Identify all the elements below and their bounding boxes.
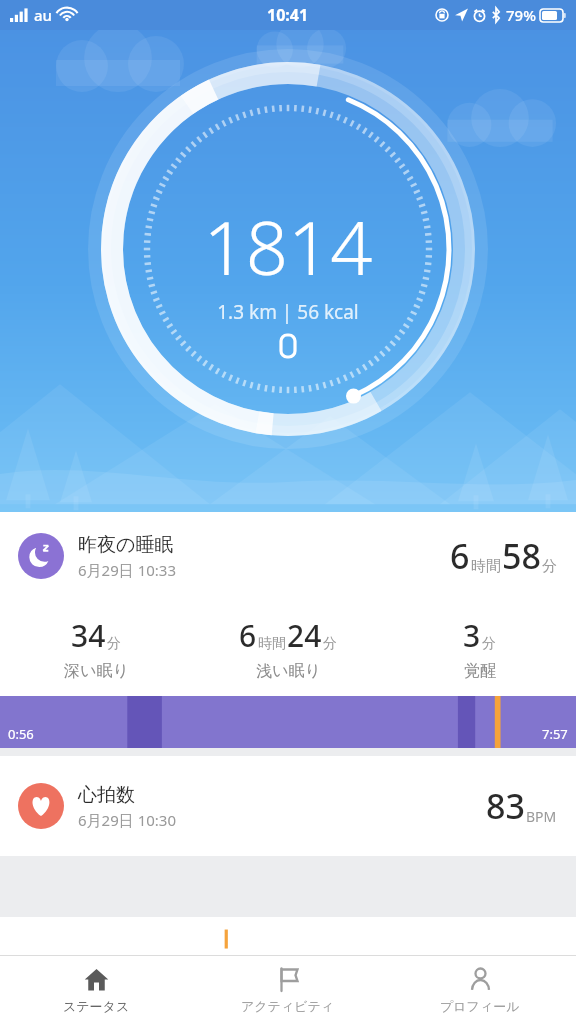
staticText: 分 (482, 635, 496, 653)
button[interactable]: 3 (384, 615, 576, 681)
staticText: アクティビティ (241, 998, 335, 1014)
staticText: BPM (526, 807, 557, 826)
staticText: 6月29日 10:33 (78, 560, 176, 580)
staticText: ステータス (63, 998, 130, 1014)
button[interactable]: 心拍数 (0, 756, 576, 856)
button[interactable]: 昨夜の睡眠 (0, 512, 576, 748)
staticText: 6 (450, 533, 470, 579)
button[interactable]: ステータス (0, 956, 192, 1024)
staticText: 分 (542, 557, 557, 576)
staticText: 分 (323, 635, 337, 653)
staticText: 6月29日 10:30 (78, 810, 176, 830)
button[interactable]: 34 (0, 615, 192, 681)
staticText: 時間 (258, 635, 286, 653)
button[interactable]: 0:56 (0, 696, 576, 748)
staticText: 分 (107, 635, 121, 653)
staticText: 1814 (203, 196, 373, 297)
staticText: 10:41 (267, 4, 309, 26)
button[interactable]: プロフィール (384, 956, 576, 1024)
staticText: 1.3 km | 56 kcal (217, 299, 359, 325)
staticText: 時間 (471, 557, 501, 576)
staticText: 覚醒 (464, 661, 496, 681)
staticText: 79% (506, 5, 536, 25)
staticText: 0:56 (8, 725, 34, 743)
staticText: 83 (486, 783, 525, 829)
staticText: au (34, 5, 52, 25)
staticText: 24 (287, 615, 322, 656)
staticText: 浅い眠り (256, 661, 321, 681)
staticText: 34 (71, 615, 106, 656)
staticText: 昨夜の睡眠 (78, 533, 174, 557)
button[interactable]: 6 (192, 615, 384, 681)
staticText: 58 (502, 533, 541, 579)
staticText: プロフィール (440, 998, 520, 1014)
staticText: 心拍数 (78, 783, 135, 807)
staticText: 深い眠り (64, 661, 129, 681)
button[interactable]: アクティビティ (192, 956, 384, 1024)
staticText: 3 (463, 615, 481, 656)
staticText: 7:57 (542, 725, 568, 743)
staticText: 6 (239, 615, 257, 656)
